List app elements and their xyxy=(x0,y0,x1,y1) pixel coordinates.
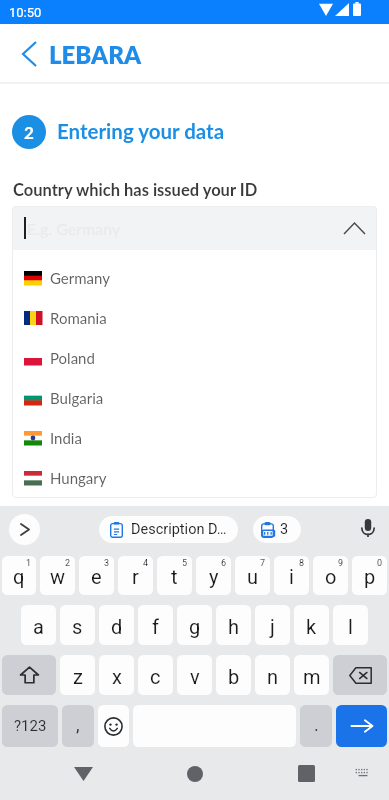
button[interactable]: Bulgaria xyxy=(12,378,377,418)
button[interactable]: y xyxy=(196,556,231,595)
staticText: 2 xyxy=(65,558,71,569)
button[interactable]: f xyxy=(138,605,173,645)
button[interactable]: . xyxy=(300,705,332,747)
staticText: 6 xyxy=(221,558,227,569)
button[interactable]: , xyxy=(62,705,94,747)
staticText: u xyxy=(247,565,259,588)
button[interactable]: Enter xyxy=(336,705,387,747)
staticText: a xyxy=(33,615,44,638)
staticText: E.g. Germany xyxy=(27,219,121,238)
button[interactable]: Voice input xyxy=(352,512,384,544)
button[interactable]: Switch keyboard xyxy=(346,747,380,800)
staticText: 9 xyxy=(338,558,344,569)
staticText: g xyxy=(189,615,201,638)
button[interactable]: Expand toolbar xyxy=(9,514,40,545)
staticText: 3 xyxy=(104,558,110,569)
button[interactable]: i xyxy=(274,556,309,595)
staticText: 4 xyxy=(143,558,149,569)
staticText: i xyxy=(289,565,294,588)
button[interactable]: u xyxy=(235,556,270,595)
button[interactable]: x xyxy=(99,655,134,695)
staticText: z xyxy=(73,665,83,688)
staticText: o xyxy=(325,565,337,588)
button[interactable]: e xyxy=(79,556,114,595)
button[interactable]: Backspace xyxy=(333,655,387,695)
button[interactable]: Emoji xyxy=(98,705,129,747)
staticText: t xyxy=(171,565,178,588)
button[interactable]: h xyxy=(216,605,251,645)
button[interactable]: Back xyxy=(9,34,49,74)
button[interactable]: Shift xyxy=(2,655,56,695)
button[interactable]: o xyxy=(313,556,348,595)
staticText: y xyxy=(209,565,219,588)
staticText: m xyxy=(303,665,321,688)
staticText: 7 xyxy=(260,558,266,569)
button[interactable]: a xyxy=(21,605,56,645)
staticText: , xyxy=(76,714,80,735)
staticText: b xyxy=(228,665,240,688)
button[interactable]: b xyxy=(216,655,251,695)
button[interactable]: n xyxy=(255,655,290,695)
staticText: Germany xyxy=(50,269,110,287)
button[interactable]: 3 xyxy=(253,516,301,543)
staticText: x xyxy=(112,665,122,688)
staticText: 2 xyxy=(24,122,34,142)
staticText: v xyxy=(190,665,200,688)
button[interactable]: s xyxy=(60,605,95,645)
button[interactable]: q xyxy=(2,556,36,595)
button[interactable]: k xyxy=(294,605,329,645)
staticText: 3 xyxy=(280,521,289,538)
button[interactable]: z xyxy=(60,655,95,695)
staticText: Entering your data xyxy=(57,119,225,144)
button[interactable]: r xyxy=(118,556,153,595)
staticText: s xyxy=(72,615,83,638)
staticText: l xyxy=(348,615,353,638)
staticText: . xyxy=(314,714,319,735)
button[interactable]: E.g. Germany xyxy=(12,206,377,250)
button[interactable]: Poland xyxy=(12,338,377,378)
button[interactable]: 2 xyxy=(12,115,46,149)
staticText: w xyxy=(50,565,66,588)
button[interactable]: d xyxy=(99,605,134,645)
button[interactable]: l xyxy=(333,605,368,645)
button[interactable]: Germany xyxy=(12,258,377,298)
button[interactable]: Hungary xyxy=(12,458,377,498)
button[interactable]: Home xyxy=(175,747,215,800)
button[interactable]: Back xyxy=(63,747,103,800)
button[interactable]: w xyxy=(40,556,75,595)
button[interactable]: v xyxy=(177,655,212,695)
staticText: 1 xyxy=(26,558,32,569)
button[interactable]: Description D… xyxy=(99,516,238,543)
button[interactable]: ?123 xyxy=(2,705,58,747)
staticText: j xyxy=(270,615,275,638)
button[interactable]: t xyxy=(157,556,192,595)
button[interactable]: g xyxy=(177,605,212,645)
staticText: p xyxy=(364,565,376,588)
staticText: f xyxy=(152,615,159,638)
staticText: Poland xyxy=(50,349,95,367)
staticText: Romania xyxy=(50,309,107,327)
button[interactable]: Recent apps xyxy=(286,747,326,800)
button[interactable]: p xyxy=(352,556,387,595)
staticText: Description D… xyxy=(131,521,227,538)
staticText: r xyxy=(132,565,139,588)
staticText: Bulgaria xyxy=(50,389,104,407)
button[interactable]: Romania xyxy=(12,298,377,338)
button[interactable]: India xyxy=(12,418,377,458)
staticText: ?123 xyxy=(14,717,47,735)
staticText: n xyxy=(267,665,279,688)
staticText: k xyxy=(306,615,317,638)
staticText: Country which has issued your ID xyxy=(13,180,258,200)
staticText: d xyxy=(111,615,123,638)
button[interactable]: m xyxy=(294,655,329,695)
staticText: 10:50 xyxy=(9,5,42,20)
staticText: e xyxy=(91,565,102,588)
button[interactable]: c xyxy=(138,655,173,695)
staticText: India xyxy=(50,429,82,447)
button[interactable]: j xyxy=(255,605,290,645)
staticText: h xyxy=(228,615,240,638)
staticText: 5 xyxy=(182,558,188,569)
staticText: 8 xyxy=(299,558,305,569)
staticText: c xyxy=(150,665,161,688)
